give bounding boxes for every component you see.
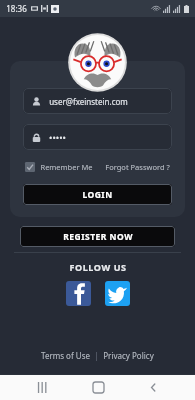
button[interactable]: LOGIN	[23, 184, 172, 205]
staticText: LOGIN	[82, 189, 113, 201]
button[interactable]: Terms of Use	[37, 347, 94, 364]
staticText: FOLLOW US	[69, 261, 127, 273]
staticText: user@fxeinstein.com	[49, 96, 128, 107]
staticText: Terms of Use	[41, 350, 90, 361]
staticText: REGISTER NOW	[63, 231, 133, 243]
staticText: •••••	[49, 131, 66, 143]
button[interactable]: Remember Me	[25, 160, 93, 174]
staticText: Remember Me	[40, 162, 93, 172]
button[interactable]: •••••	[23, 124, 172, 150]
button[interactable]: Privacy Policy	[99, 347, 158, 364]
button[interactable]: Recents	[29, 374, 55, 400]
staticText: |	[94, 350, 99, 361]
staticText: Forgot Password ?	[105, 162, 170, 172]
button[interactable]: Twitter	[105, 281, 130, 306]
button[interactable]: Home	[85, 374, 111, 400]
button[interactable]: REGISTER NOW	[20, 226, 175, 247]
button[interactable]: Forgot Password ?	[105, 160, 170, 174]
button[interactable]: Facebook	[66, 281, 91, 306]
staticText: Privacy Policy	[103, 350, 154, 361]
button[interactable]: Back	[140, 374, 166, 400]
button[interactable]: user@fxeinstein.com	[23, 88, 172, 114]
staticText: 18:36	[6, 3, 27, 14]
